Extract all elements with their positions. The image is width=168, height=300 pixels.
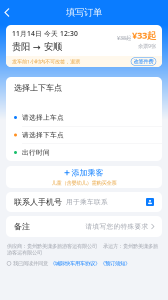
staticText: 备注: [14, 222, 30, 231]
staticText: 请选择上车点: [22, 113, 64, 122]
button[interactable]: 我已阅读并同意: [7, 260, 161, 267]
staticText: 发车前1小时内不可改签，退票: [12, 58, 80, 65]
staticText: 11月14日 今天 12:30: [12, 29, 78, 38]
staticText: 我已阅读并同意: [13, 260, 48, 267]
button[interactable]: Back: [0, 3, 14, 21]
staticText: 余票9张: [138, 42, 156, 49]
button[interactable]: 联系人手机号: [6, 192, 162, 212]
staticText: 请选择下车点: [22, 131, 64, 139]
button[interactable]: 备注: [6, 216, 162, 237]
staticText: 选择上下车点: [14, 83, 62, 93]
button[interactable]: 请选择下车点: [6, 126, 162, 144]
button[interactable]: 出行时间: [6, 144, 162, 161]
staticText: 供应商：贵州黔美潇多旅游客运有限公司 承运方：贵州黔美潇多旅游客运有限公司: [7, 243, 158, 256]
staticText: 改签件费: [133, 58, 153, 65]
staticText: 用于乘车联系: [66, 198, 108, 206]
button[interactable]: 添加乘客: [6, 168, 162, 178]
staticText: 填写订单: [66, 7, 102, 18]
staticText: 《城际快车用车协议》《预订须知》: [50, 260, 130, 267]
button[interactable]: 请选择上车点: [6, 109, 162, 126]
staticText: ¥38起: [117, 34, 131, 41]
staticText: 联系人手机号: [14, 197, 62, 207]
staticText: 儿童（含婴幼儿）需购买全票: [51, 180, 116, 186]
staticText: 添加乘客: [71, 168, 103, 178]
staticText: 请填写您的特殊要求: [85, 222, 148, 231]
staticText: ¥33起: [132, 29, 156, 41]
staticText: 贵阳 → 安顺: [12, 41, 62, 52]
staticText: 出行时间: [22, 148, 50, 157]
